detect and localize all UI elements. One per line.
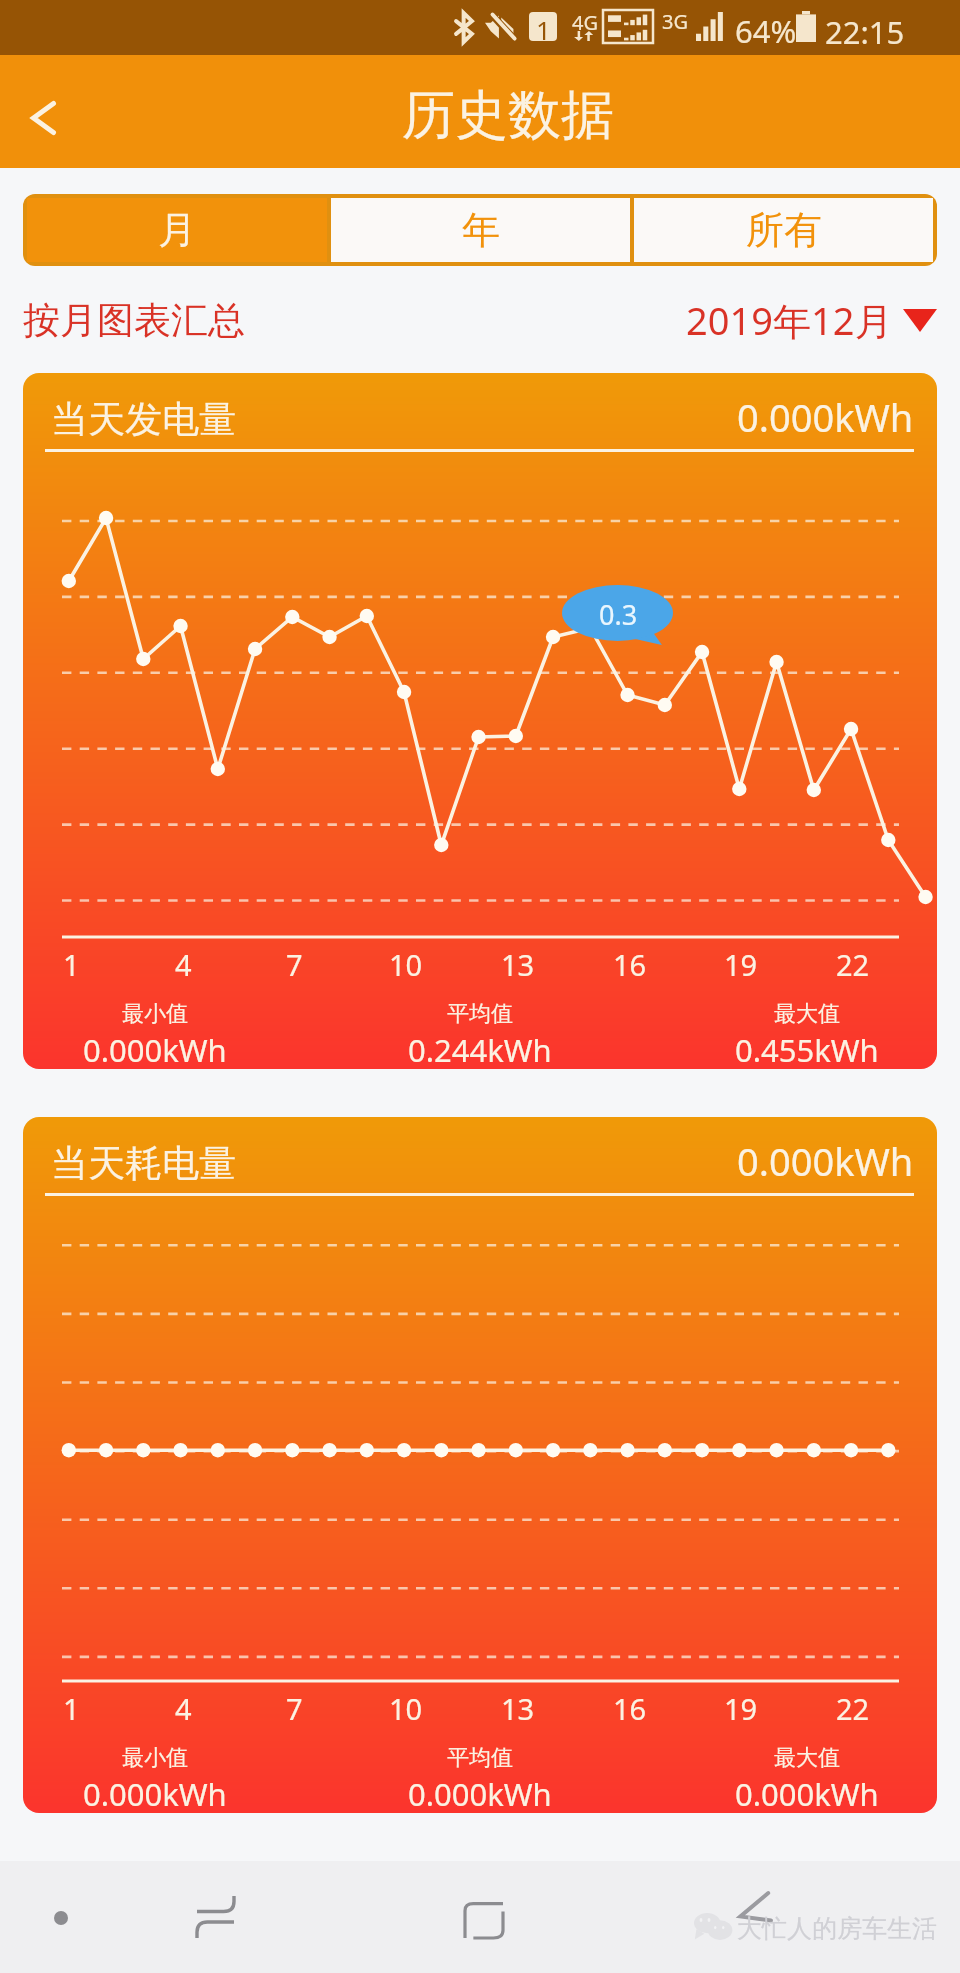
staticText: 3G: [662, 8, 688, 35]
staticText: 22: [836, 945, 870, 984]
staticText: 19: [724, 1689, 758, 1728]
staticText: 4: [175, 945, 192, 984]
staticText: 0.000kWh: [737, 1135, 914, 1187]
staticText: 历史数据: [402, 82, 614, 149]
staticText: 13: [501, 945, 535, 984]
staticText: 当天耗电量: [51, 1140, 236, 1187]
staticText: 0.244kWh: [408, 1029, 552, 1069]
staticText: 1: [63, 945, 80, 984]
staticText: 0.000kWh: [83, 1029, 227, 1069]
staticText: 最小值: [122, 1744, 188, 1772]
staticText: 月: [158, 206, 196, 254]
staticText: 1: [536, 12, 551, 41]
button[interactable]: Home: [434, 1868, 534, 1968]
staticText: 当天发电量: [51, 396, 236, 443]
button[interactable]: 年: [331, 198, 630, 262]
staticText: 1: [63, 1689, 80, 1728]
button[interactable]: Back: [165, 1867, 265, 1967]
staticText: 4G: [572, 9, 598, 36]
staticText: 0.000kWh: [83, 1773, 227, 1813]
button[interactable]: Back: [0, 61, 86, 174]
staticText: 平均值: [447, 1744, 513, 1772]
staticText: 0.000kWh: [737, 391, 914, 443]
staticText: 19: [724, 945, 758, 984]
staticText: 0.455kWh: [735, 1029, 879, 1069]
staticText: 2019年12月: [686, 294, 893, 346]
button[interactable]: Menu: [11, 1868, 111, 1968]
staticText: 4: [175, 1689, 192, 1728]
staticText: 年: [462, 206, 500, 254]
staticText: 13: [501, 1689, 535, 1728]
button[interactable]: 所有: [634, 198, 933, 262]
staticText: 7: [286, 945, 303, 984]
staticText: 22:15: [825, 11, 905, 53]
staticText: 10: [389, 1689, 423, 1728]
staticText: 所有: [746, 206, 822, 254]
staticText: 按月图表汇总: [23, 297, 245, 344]
staticText: 16: [613, 1689, 647, 1728]
staticText: 最小值: [122, 1000, 188, 1028]
staticText: 7: [286, 1689, 303, 1728]
button[interactable]: 月: [27, 198, 327, 262]
button[interactable]: 当天耗电量: [23, 1117, 937, 1813]
staticText: 最大值: [774, 1744, 840, 1772]
staticText: 64%: [735, 10, 797, 52]
staticText: 0.000kWh: [735, 1773, 879, 1813]
staticText: 10: [389, 945, 423, 984]
staticText: 0.3: [599, 596, 638, 633]
staticText: 16: [613, 945, 647, 984]
staticText: 0.000kWh: [408, 1773, 552, 1813]
staticText: 最大值: [774, 1000, 840, 1028]
staticText: 22: [836, 1689, 870, 1728]
button[interactable]: 2019年12月: [686, 294, 937, 346]
staticText: 大忙人的房车生活: [737, 1913, 937, 1944]
staticText: 平均值: [447, 1000, 513, 1028]
button[interactable]: 当天发电量: [23, 373, 937, 1069]
